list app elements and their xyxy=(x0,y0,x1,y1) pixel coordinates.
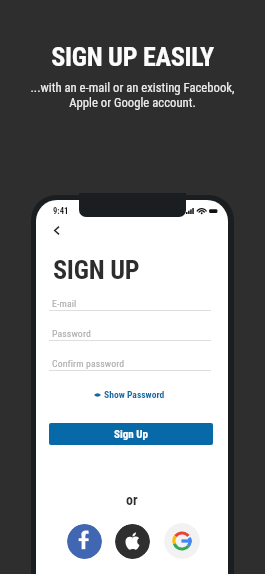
staticText: Sign Up xyxy=(114,428,148,441)
staticText: 9:41 xyxy=(53,206,69,216)
button[interactable]: Show Password xyxy=(94,388,165,401)
button[interactable]: Back xyxy=(46,220,66,240)
button[interactable]: Sign up with Google xyxy=(164,523,200,559)
staticText: Confirm password xyxy=(52,358,125,369)
staticText: Show Password xyxy=(104,389,165,400)
staticText: Password xyxy=(52,328,91,339)
button[interactable]: Sign up with Facebook xyxy=(67,524,102,559)
staticText: ...with an e-mail or an existing Faceboo… xyxy=(30,80,235,110)
button[interactable]: Sign Up xyxy=(49,423,213,445)
staticText: or xyxy=(126,492,138,508)
button[interactable]: Sign up with Apple xyxy=(115,524,150,559)
staticText: SIGN UP xyxy=(53,255,140,285)
staticText: E-mail xyxy=(52,298,77,309)
staticText: SIGN UP EASILY xyxy=(51,42,214,72)
